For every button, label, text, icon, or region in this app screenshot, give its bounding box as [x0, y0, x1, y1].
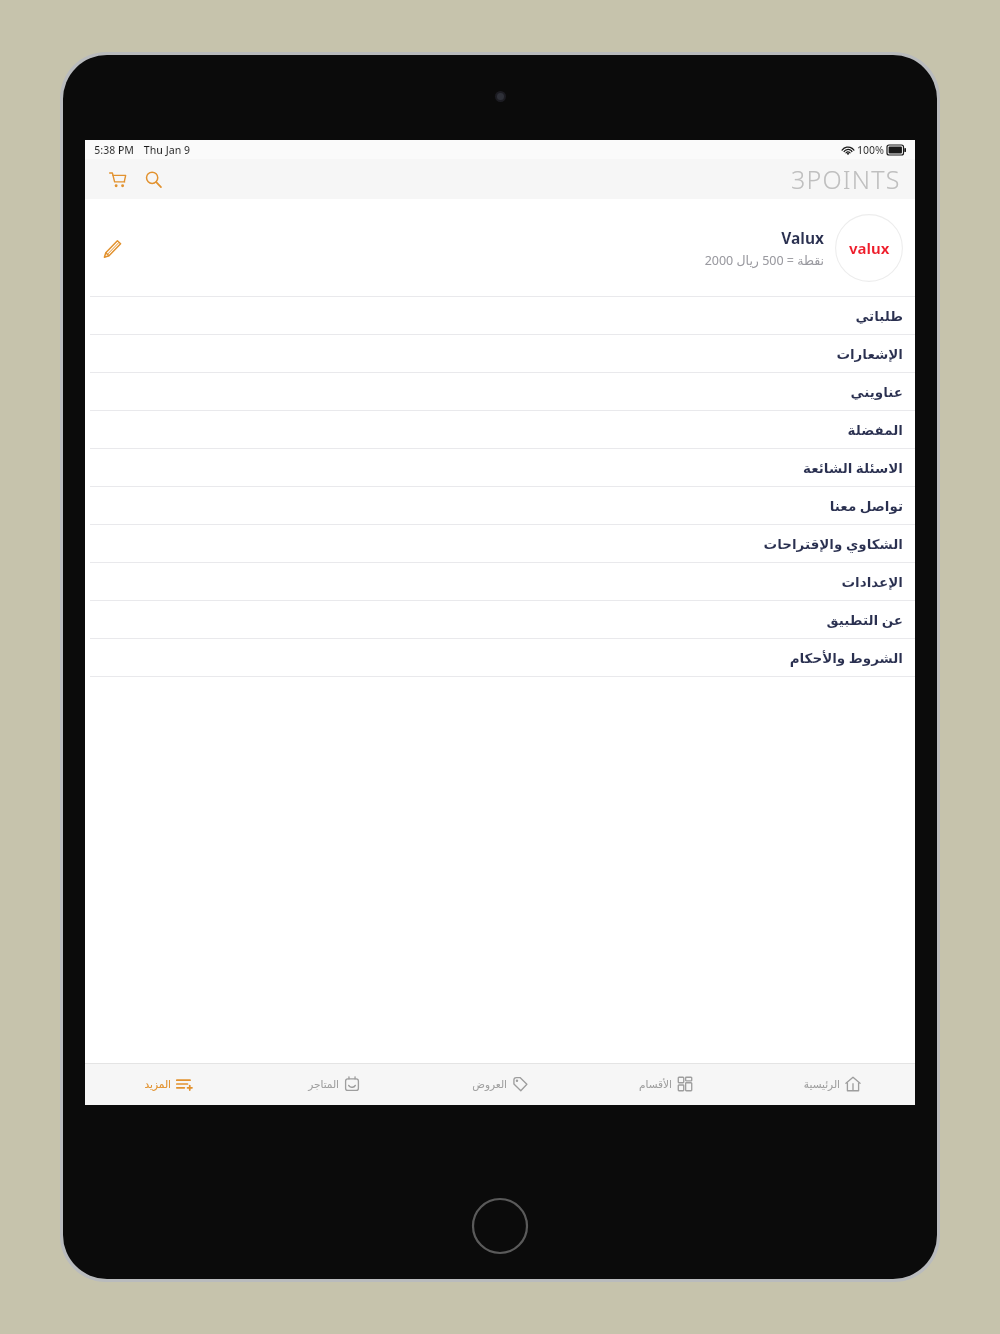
- button[interactable]: العروض: [417, 1063, 583, 1105]
- button[interactable]: الاسئلة الشائعة: [85, 449, 915, 487]
- staticText: 2000 نقطة = 500 ريال: [704, 252, 824, 269]
- staticText: العروض: [472, 1078, 507, 1090]
- button[interactable]: المتاجر: [251, 1063, 417, 1105]
- button[interactable]: Edit profile: [85, 199, 915, 297]
- staticText: 100%: [857, 143, 884, 157]
- staticText: الشروط والأحكام: [789, 649, 903, 667]
- staticText: الاسئلة الشائعة: [802, 459, 903, 477]
- staticText: 3POINTS: [791, 162, 901, 196]
- staticText: 5:38 PM: [94, 143, 134, 157]
- staticText: الإعدادات: [841, 574, 903, 590]
- staticText: تواصل معنا: [829, 497, 903, 515]
- staticText: طلباتي: [855, 308, 903, 324]
- button[interactable]: الشروط والأحكام: [85, 639, 915, 677]
- button[interactable]: المزيد: [85, 1063, 251, 1105]
- button[interactable]: الرئيسية: [749, 1063, 915, 1105]
- staticText: valux: [849, 238, 890, 258]
- button[interactable]: طلباتي: [85, 297, 915, 335]
- staticText: Thu Jan 9: [143, 143, 190, 157]
- staticText: عناويني: [850, 384, 903, 400]
- staticText: الأقسام: [639, 1078, 672, 1090]
- button[interactable]: الإشعارات: [85, 335, 915, 373]
- button[interactable]: 3POINTS: [791, 162, 901, 196]
- button[interactable]: عن التطبيق: [85, 601, 915, 639]
- button[interactable]: المفضلة: [85, 411, 915, 449]
- button[interactable]: عناويني: [85, 373, 915, 411]
- button[interactable]: Edit profile: [98, 233, 128, 263]
- button[interactable]: Search: [137, 163, 169, 195]
- button[interactable]: الإعدادات: [85, 563, 915, 601]
- staticText: Valux: [781, 227, 824, 248]
- button[interactable]: الشكاوي والإقتراحات: [85, 525, 915, 563]
- button[interactable]: Cart: [101, 163, 133, 195]
- staticText: الإشعارات: [836, 346, 903, 362]
- staticText: الرئيسية: [803, 1078, 840, 1090]
- button[interactable]: تواصل معنا: [85, 487, 915, 525]
- staticText: المزيد: [144, 1078, 171, 1090]
- staticText: عن التطبيق: [826, 611, 903, 629]
- button[interactable]: الأقسام: [583, 1063, 749, 1105]
- button[interactable]: Home button: [471, 1197, 529, 1255]
- staticText: الشكاوي والإقتراحات: [763, 535, 903, 553]
- staticText: المتاجر: [308, 1078, 339, 1090]
- staticText: المفضلة: [847, 422, 903, 438]
